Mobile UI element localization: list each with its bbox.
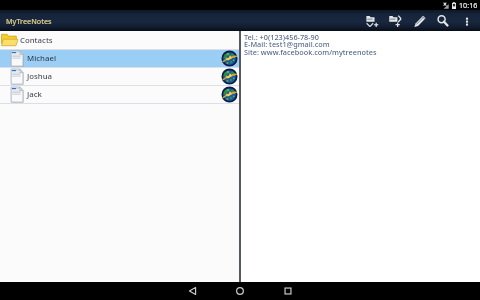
staticText: MyTreeNotes — [6, 16, 52, 26]
button[interactable]: Move folder — [384, 10, 408, 31]
staticText: Michael — [27, 53, 57, 64]
button[interactable]: Joshua — [0, 68, 239, 85]
staticText: Jack — [27, 89, 42, 100]
button[interactable]: Jack — [0, 86, 239, 103]
button[interactable]: Michael — [0, 50, 239, 67]
staticText: 10:16 — [459, 0, 478, 10]
button[interactable]: More options — [455, 10, 479, 31]
button[interactable]: Tel.: +0(123)456-78-90 — [244, 32, 319, 42]
button[interactable]: Contacts — [0, 31, 239, 49]
staticText: Contacts — [20, 35, 53, 46]
staticText: Joshua — [27, 71, 53, 82]
button[interactable]: New folder — [360, 10, 384, 31]
button[interactable]: Site: www.facebook.com/mytreenotes — [244, 47, 377, 57]
button[interactable]: Back — [168, 282, 216, 300]
button[interactable]: Home — [216, 282, 264, 300]
button[interactable]: Search — [431, 10, 455, 31]
button[interactable]: E-Mail: test1@gmail.com — [244, 39, 330, 49]
button[interactable]: Recent apps — [264, 282, 312, 300]
button[interactable]: Edit — [408, 10, 431, 31]
